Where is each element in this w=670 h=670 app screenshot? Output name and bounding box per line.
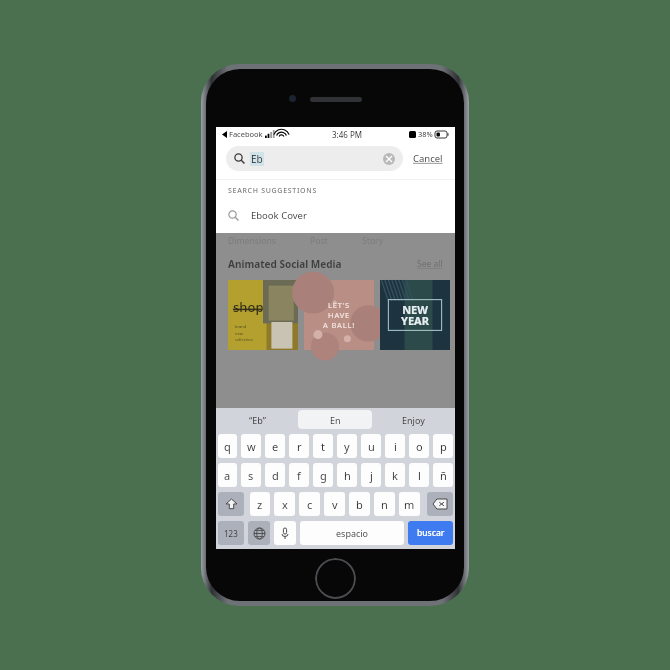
staticText: Ebook Cover (251, 209, 307, 222)
staticText: g (320, 468, 327, 483)
button[interactable]: l (409, 463, 429, 487)
button[interactable]: g (313, 463, 333, 487)
button[interactable]: w (241, 434, 261, 458)
button[interactable]: x (274, 492, 295, 516)
staticText: shop (233, 298, 264, 316)
button[interactable]: Dictate (274, 521, 296, 545)
staticText: j (370, 468, 373, 483)
staticText: “Eb” (249, 414, 266, 426)
button[interactable]: b (349, 492, 370, 516)
staticText: ñ (440, 468, 447, 483)
button[interactable]: v (324, 492, 345, 516)
staticText: e (272, 439, 279, 454)
button[interactable]: Shift (218, 492, 244, 516)
staticText: En (330, 414, 341, 426)
button[interactable]: c (299, 492, 320, 516)
staticText: f (297, 468, 301, 483)
button[interactable]: shop (228, 280, 298, 350)
staticText: s (248, 468, 254, 483)
staticText: Enjoy (402, 414, 425, 426)
staticText: w (247, 439, 256, 454)
staticText: See all (417, 258, 443, 270)
staticText: l (418, 468, 421, 483)
button[interactable]: y (337, 434, 357, 458)
staticText: m (404, 497, 415, 512)
staticText: o (416, 439, 423, 454)
button[interactable]: espacio (300, 521, 404, 545)
button[interactable]: 123 (218, 521, 244, 545)
button[interactable]: t (313, 434, 333, 458)
staticText: y (344, 439, 350, 454)
staticText: r (297, 439, 302, 454)
staticText: t (321, 439, 325, 454)
button[interactable]: See all (417, 258, 443, 270)
button[interactable]: “Eb” (221, 410, 294, 429)
button[interactable]: d (265, 463, 285, 487)
button[interactable]: a (218, 463, 237, 487)
staticText: i (394, 439, 397, 454)
staticText: Cancel (413, 152, 443, 165)
staticText: Animated Social Media (228, 257, 342, 271)
staticText: h (344, 468, 351, 483)
staticText: Eb (251, 152, 263, 166)
staticText: Dimensions (228, 235, 276, 247)
staticText: p (440, 439, 447, 454)
staticText: SEARCH SUGGESTIONS (228, 186, 317, 196)
button[interactable]: Enjoy (376, 410, 450, 429)
button[interactable]: En (298, 410, 372, 429)
button[interactable]: Backspace (427, 492, 453, 516)
staticText: NEW YEAR (401, 302, 429, 329)
staticText: a (224, 468, 231, 483)
button[interactable]: r (289, 434, 309, 458)
staticText: brand new collection (235, 324, 253, 342)
staticText: espacio (336, 527, 369, 539)
staticText: 38% (418, 129, 433, 139)
button[interactable]: Home (315, 558, 356, 599)
button[interactable]: Eb (226, 146, 403, 171)
button[interactable]: ñ (433, 463, 453, 487)
staticText: z (257, 497, 263, 512)
staticText: 123 (224, 528, 238, 539)
staticText: buscar (417, 527, 445, 539)
button[interactable]: buscar (408, 521, 453, 545)
button[interactable]: Language (248, 521, 270, 545)
button[interactable]: u (361, 434, 381, 458)
button[interactable]: NEW YEAR (380, 280, 450, 350)
button[interactable]: n (374, 492, 395, 516)
button[interactable]: s (241, 463, 261, 487)
staticText: x (282, 497, 288, 512)
button[interactable]: e (265, 434, 285, 458)
staticText: LET'S HAVE A BALL! (323, 300, 355, 330)
button[interactable]: k (385, 463, 405, 487)
button[interactable]: i (385, 434, 405, 458)
button[interactable]: Ebook Cover (216, 205, 455, 225)
staticText: u (368, 439, 375, 454)
button[interactable]: LET'S HAVE A BALL! (304, 280, 374, 350)
button[interactable]: q (218, 434, 237, 458)
button[interactable]: Cancel (411, 150, 445, 167)
button[interactable]: o (409, 434, 429, 458)
staticText: k (392, 468, 398, 483)
button[interactable]: h (337, 463, 357, 487)
staticText: Facebook (229, 129, 263, 139)
staticText: d (272, 468, 279, 483)
staticText: c (307, 497, 313, 512)
button[interactable]: m (399, 492, 420, 516)
staticText: q (224, 439, 231, 454)
button[interactable]: j (361, 463, 381, 487)
staticText: 3:46 PM (332, 129, 363, 140)
staticText: n (381, 497, 388, 512)
button[interactable]: z (250, 492, 270, 516)
staticText: v (332, 497, 338, 512)
button[interactable]: p (433, 434, 453, 458)
staticText: b (356, 497, 363, 512)
staticText: Story (362, 235, 384, 247)
staticText: Post (310, 235, 328, 247)
button[interactable]: f (289, 463, 309, 487)
button[interactable]: Clear (383, 153, 395, 165)
